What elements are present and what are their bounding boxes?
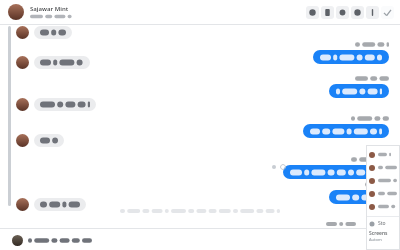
button[interactable]	[8, 4, 24, 20]
button[interactable]	[16, 134, 400, 147]
button[interactable]: More options	[366, 6, 379, 19]
button[interactable]	[369, 174, 397, 187]
button[interactable]	[16, 56, 400, 69]
button[interactable]: React	[280, 164, 286, 170]
button[interactable]	[16, 98, 400, 111]
button[interactable]	[0, 181, 389, 204]
button[interactable]: Screens	[369, 230, 388, 242]
button[interactable]	[369, 148, 397, 161]
button[interactable]	[0, 156, 389, 179]
button[interactable]: Mute notifications	[351, 6, 364, 19]
button[interactable]	[369, 200, 397, 213]
button[interactable]	[369, 187, 397, 200]
button[interactable]: Information	[306, 6, 319, 19]
staticText: Autom	[369, 237, 382, 242]
button[interactable]	[16, 198, 400, 211]
button[interactable]	[0, 41, 389, 64]
button[interactable]	[0, 75, 389, 98]
button[interactable]	[369, 161, 397, 174]
button[interactable]: Mark as done	[381, 6, 394, 19]
button[interactable]: Sajawar Mint	[30, 5, 306, 19]
button[interactable]	[16, 26, 400, 39]
button[interactable]: Sto	[369, 220, 397, 227]
button[interactable]	[0, 115, 389, 138]
button[interactable]: Archive	[321, 6, 334, 19]
staticText: Screens	[369, 230, 388, 237]
button[interactable]: Star	[336, 6, 349, 19]
button[interactable]	[12, 229, 400, 250]
staticText: Sto	[378, 220, 386, 227]
staticText: Sajawar Mint	[30, 5, 69, 13]
